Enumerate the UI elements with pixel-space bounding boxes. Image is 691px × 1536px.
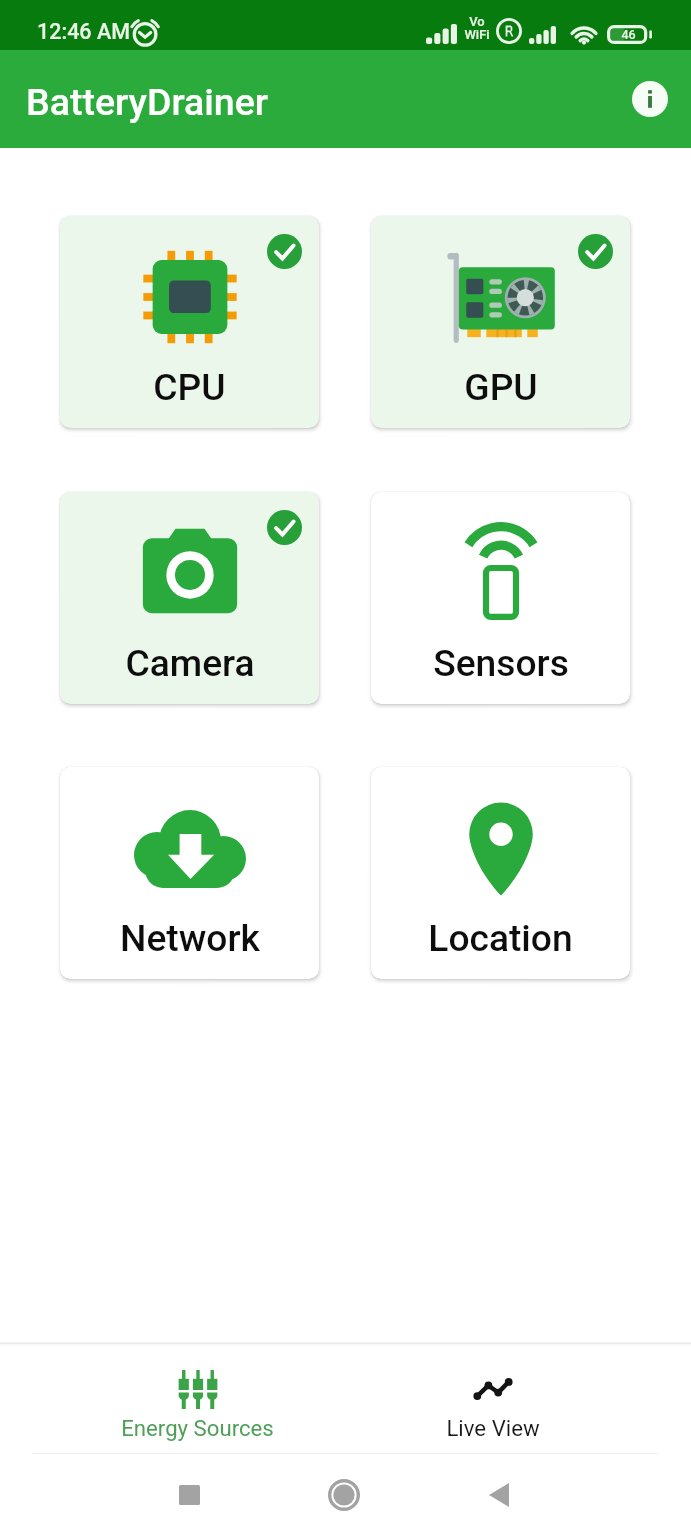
button[interactable]: Location	[371, 767, 630, 979]
staticText: 46	[621, 27, 636, 42]
staticText: WiFi	[464, 27, 490, 42]
button[interactable]: GPU	[371, 216, 630, 428]
staticText: Vo	[469, 14, 485, 29]
staticText: Live View	[446, 1415, 540, 1441]
staticText: CPU	[153, 365, 226, 409]
button[interactable]: Network	[60, 767, 319, 979]
button[interactable]: Home	[320, 1471, 368, 1519]
button[interactable]: Live View	[345, 1346, 641, 1453]
staticText: Sensors	[433, 641, 569, 685]
staticText: Location	[428, 916, 573, 960]
staticText: Network	[120, 916, 260, 960]
button[interactable]: Energy Sources	[50, 1346, 345, 1453]
staticText: 12:46 AM	[37, 19, 130, 44]
staticText: Energy Sources	[121, 1415, 274, 1441]
button[interactable]: Info	[629, 78, 671, 120]
staticText: GPU	[464, 365, 538, 409]
button[interactable]: CPU	[60, 216, 319, 428]
button[interactable]: Sensors	[371, 492, 630, 704]
staticText: BatteryDrainer	[26, 80, 268, 124]
button[interactable]: Back	[475, 1471, 523, 1519]
button[interactable]: Recents	[165, 1471, 213, 1519]
button[interactable]: Camera	[60, 492, 319, 704]
staticText: Camera	[125, 641, 255, 685]
